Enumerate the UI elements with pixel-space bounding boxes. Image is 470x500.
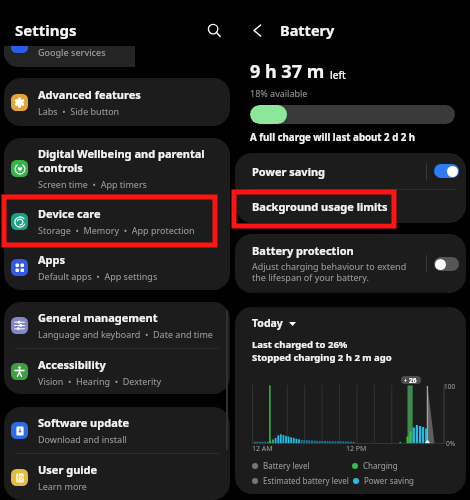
staticText: Power saving [252, 164, 326, 179]
staticText: A full charge will last about 2 d 2 h [250, 131, 416, 144]
button[interactable]: On [434, 164, 459, 178]
staticText: Vision • Hearing • Dexterity [38, 375, 162, 387]
staticText: Settings [15, 20, 77, 40]
button[interactable]: Accessibility [4, 349, 230, 394]
staticText: Software update [38, 415, 130, 430]
staticText: User guide [38, 462, 98, 477]
button[interactable]: Off [434, 257, 459, 271]
staticText: Advanced features [38, 87, 141, 102]
staticText: Estimated battery level [263, 475, 349, 486]
staticText: Language and keyboard • Date and time [38, 328, 213, 340]
staticText: Labs • Side button [38, 105, 120, 117]
staticText: Apps [38, 252, 66, 267]
staticText: Accessibility [38, 357, 106, 372]
button[interactable]: Device care [4, 198, 230, 244]
staticText: Screen time • App timers [38, 178, 147, 190]
staticText: Background usage limits [252, 199, 388, 214]
button[interactable]: Battery protection [235, 234, 466, 293]
staticText: Digital Wellbeing and parental controls [38, 146, 220, 175]
button[interactable]: Background usage limits [235, 190, 466, 223]
staticText: 26 [409, 376, 417, 384]
staticText: Download and install [38, 433, 127, 445]
button[interactable]: Back [246, 19, 268, 41]
staticText: Last charged to 26% [252, 338, 348, 351]
staticText: 12 AM [252, 444, 273, 454]
staticText: Storage • Memory • App protection [38, 224, 195, 236]
button[interactable]: Software update [4, 407, 230, 453]
staticText: Battery [280, 20, 335, 40]
button[interactable]: User guide [4, 454, 230, 500]
staticText: 0% [446, 439, 456, 448]
staticText: 9 h 37 m [250, 59, 325, 84]
staticText: 18% available [250, 87, 308, 99]
button[interactable]: Power saving [235, 153, 466, 189]
button[interactable]: Google services [4, 46, 135, 67]
staticText: Today [252, 316, 283, 330]
button[interactable]: Search [201, 17, 227, 43]
staticText: Default apps • App settings [38, 270, 158, 282]
staticText: Google services [38, 46, 106, 58]
staticText: Charging [363, 460, 398, 471]
staticText: Power saving [364, 475, 415, 486]
button[interactable]: Digital Wellbeing and parental controls [4, 138, 230, 198]
staticText: Stopped charging 2 h 2 m ago [252, 351, 392, 364]
staticText: Battery level [263, 460, 310, 471]
button[interactable]: Apps [4, 244, 230, 290]
staticText: Device care [38, 206, 101, 221]
button[interactable]: Advanced features [4, 78, 230, 126]
staticText: General management [38, 310, 158, 325]
staticText: Learn more [38, 480, 87, 492]
button[interactable]: General management [4, 302, 230, 348]
button[interactable]: Today [252, 316, 296, 330]
staticText: Adjust charging behaviour to extend the … [252, 260, 422, 284]
staticText: left [330, 68, 346, 82]
staticText: Battery protection [252, 243, 354, 258]
staticText: 12 PM [346, 444, 367, 454]
staticText: 100 [444, 382, 456, 391]
